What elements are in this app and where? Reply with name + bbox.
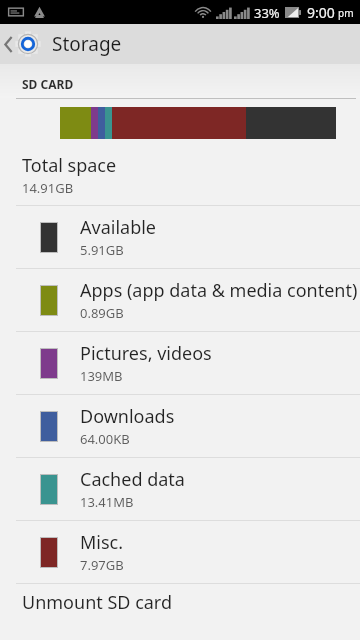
staticText: Pictures, videos bbox=[80, 341, 212, 366]
staticText: 7.97GB bbox=[80, 556, 124, 574]
staticText: 0.89GB bbox=[80, 304, 124, 322]
button[interactable]: Total space bbox=[0, 147, 360, 205]
staticText: Misc. bbox=[80, 530, 124, 555]
staticText: Cached data bbox=[80, 467, 185, 492]
staticText: 13.41MB bbox=[80, 493, 134, 511]
staticText: 5.91GB bbox=[80, 241, 124, 259]
staticText: Downloads bbox=[80, 404, 175, 429]
staticText: 139MB bbox=[80, 367, 123, 385]
staticText: Apps (app data & media content) bbox=[80, 278, 358, 303]
staticText: Unmount SD card bbox=[22, 590, 173, 615]
button[interactable]: Downloads bbox=[0, 395, 360, 457]
staticText: 64.00KB bbox=[80, 430, 130, 448]
button[interactable]: Apps (app data & media content) bbox=[0, 269, 360, 331]
staticText: Available bbox=[80, 215, 156, 240]
staticText: 33% bbox=[254, 4, 280, 22]
button[interactable]: Navigate up bbox=[0, 24, 44, 64]
button[interactable]: Misc. bbox=[0, 521, 360, 583]
button[interactable]: Available bbox=[0, 206, 360, 268]
staticText: Total space bbox=[22, 153, 117, 178]
button[interactable]: Unmount SD card bbox=[0, 584, 360, 624]
button[interactable]: Cached data bbox=[0, 458, 360, 520]
staticText: 9:00 bbox=[307, 3, 335, 22]
button[interactable]: Pictures, videos bbox=[0, 332, 360, 394]
staticText: pm bbox=[338, 6, 354, 20]
staticText: Storage bbox=[52, 31, 122, 57]
staticText: SD CARD bbox=[22, 76, 74, 92]
staticText: 14.91GB bbox=[22, 179, 74, 197]
